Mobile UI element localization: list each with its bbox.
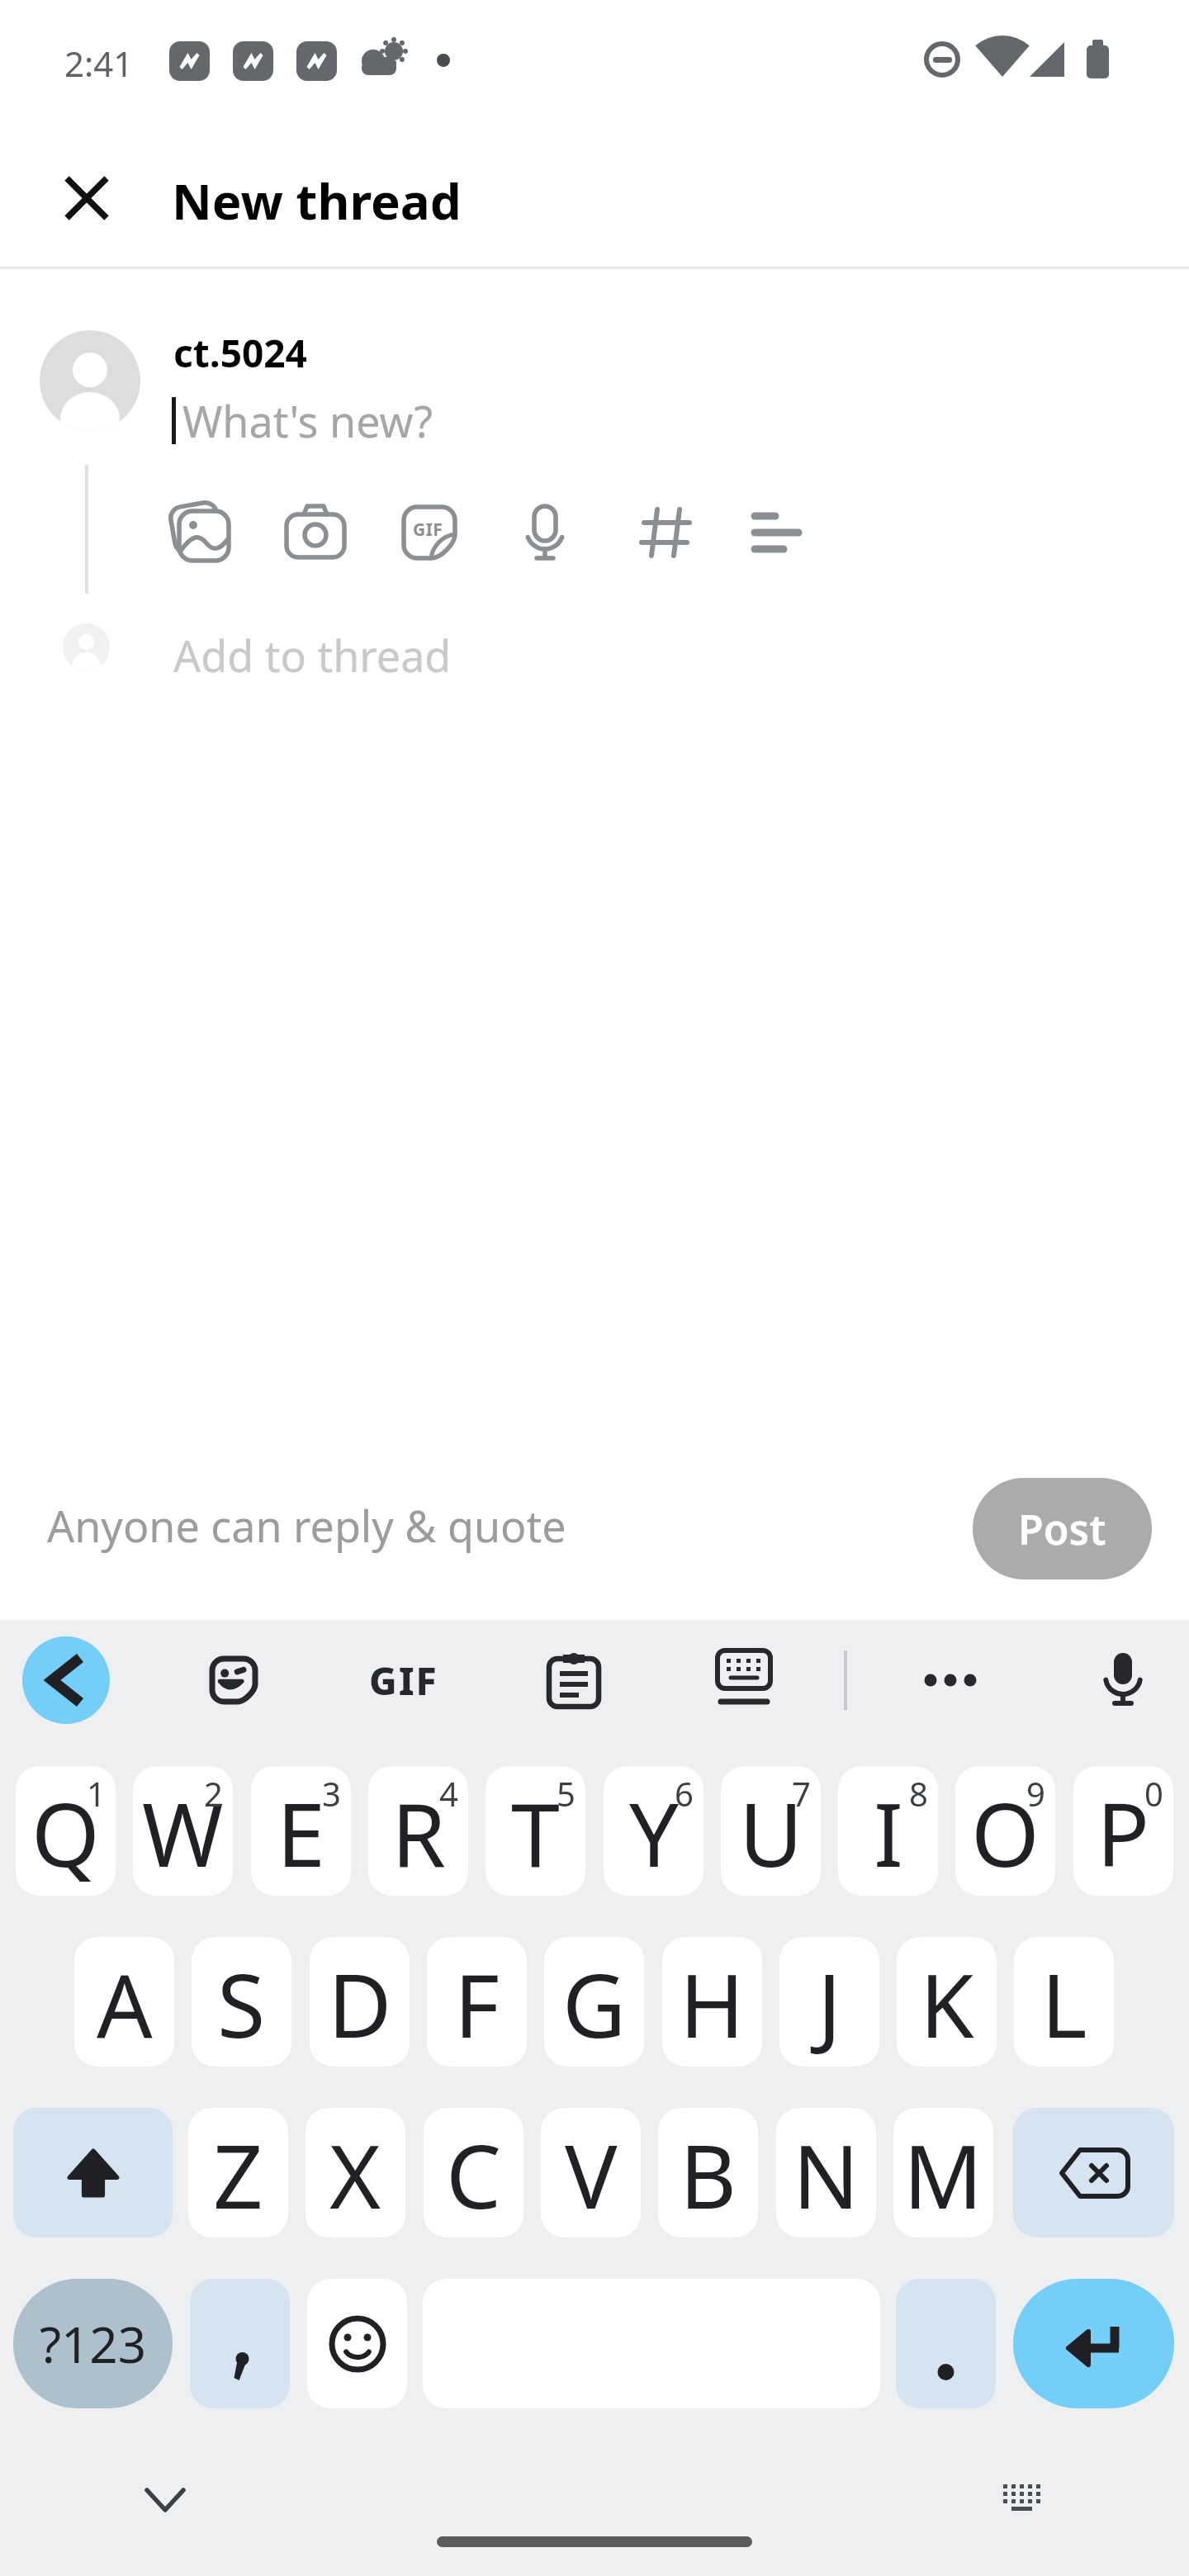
staticText: L (1041, 1944, 1087, 2063)
button[interactable]: V (541, 2108, 641, 2237)
button[interactable]: Add to thread (40, 614, 502, 684)
button[interactable]: C (424, 2108, 523, 2237)
staticText: Anyone can reply & quote (47, 1496, 566, 1555)
staticText: 5 (557, 1771, 576, 1816)
staticText: Z (213, 2115, 263, 2234)
staticText: P (1097, 1773, 1150, 1892)
staticText: R (391, 1773, 446, 1892)
button[interactable] (989, 2474, 1059, 2526)
button[interactable]: P (1073, 1766, 1173, 1896)
staticText: E (277, 1773, 325, 1892)
button[interactable] (49, 160, 125, 236)
staticText: Add to thread (173, 626, 452, 684)
button[interactable]: J (779, 1937, 879, 2067)
button[interactable] (13, 2108, 173, 2237)
button[interactable] (190, 2279, 290, 2408)
button[interactable] (1013, 2279, 1174, 2408)
button[interactable]: GIF (361, 1649, 447, 1712)
staticText: 2 (204, 1771, 223, 1816)
staticText: GIF (413, 518, 443, 542)
button[interactable] (1013, 2108, 1174, 2237)
staticText: 2:41 (64, 40, 134, 87)
button[interactable] (130, 2474, 200, 2526)
staticText: J (817, 1944, 841, 2063)
button[interactable]: ?123 (13, 2279, 173, 2408)
button[interactable]: I (838, 1766, 938, 1896)
staticText: O (971, 1773, 1040, 1892)
staticText: F (454, 1944, 500, 2063)
staticText: 8 (909, 1771, 928, 1816)
staticText: A (97, 1944, 153, 2063)
staticText: GIF (369, 1655, 438, 1707)
button[interactable]: E (251, 1766, 351, 1896)
button[interactable] (307, 2279, 407, 2408)
staticText: T (511, 1773, 560, 1892)
button[interactable]: S (192, 1937, 291, 2067)
staticText: U (739, 1773, 803, 1892)
button[interactable]: O (955, 1766, 1055, 1896)
button[interactable] (626, 493, 705, 572)
staticText: Q (31, 1773, 100, 1892)
staticText: 3 (322, 1771, 341, 1816)
button[interactable]: D (310, 1937, 410, 2067)
button[interactable]: X (306, 2108, 405, 2237)
staticText: W (142, 1773, 224, 1892)
staticText: G (562, 1944, 627, 2063)
button[interactable]: Z (188, 2108, 288, 2237)
staticText: K (920, 1944, 974, 2063)
staticText: Post (1018, 1501, 1106, 1557)
staticText: I (874, 1773, 903, 1892)
button[interactable]: B (658, 2108, 758, 2237)
staticText: X (329, 2115, 381, 2234)
button[interactable] (896, 2279, 996, 2408)
staticText: Y (629, 1773, 679, 1892)
button[interactable]: GIF (390, 493, 469, 572)
button[interactable] (912, 1650, 988, 1710)
button[interactable]: R (368, 1766, 468, 1896)
button[interactable]: H (662, 1937, 762, 2067)
staticText: 9 (1026, 1771, 1045, 1816)
staticText: What's new? (182, 391, 433, 450)
staticText: V (565, 2115, 618, 2234)
button[interactable]: L (1014, 1937, 1114, 2067)
button[interactable]: Anyone can reply & quote (47, 1496, 675, 1562)
button[interactable] (276, 493, 355, 572)
button[interactable] (161, 493, 240, 572)
button[interactable] (505, 493, 585, 572)
button[interactable]: Y (604, 1766, 703, 1896)
button[interactable]: K (897, 1937, 997, 2067)
button[interactable]: G (544, 1937, 644, 2067)
button[interactable] (708, 1646, 779, 1709)
button[interactable]: W (133, 1766, 233, 1896)
staticText: ?123 (40, 2310, 146, 2378)
staticText: 4 (439, 1771, 458, 1816)
button[interactable]: F (427, 1937, 527, 2067)
button[interactable] (202, 1649, 265, 1712)
staticText: N (793, 2115, 860, 2234)
staticText: D (328, 1944, 392, 2063)
button[interactable]: Q (16, 1766, 116, 1896)
staticText: 6 (675, 1771, 694, 1816)
staticText: C (446, 2115, 501, 2234)
staticText: B (680, 2115, 737, 2234)
button[interactable]: N (776, 2108, 876, 2237)
staticText: S (217, 1944, 266, 2063)
button[interactable] (540, 1646, 608, 1714)
button[interactable]: Post (973, 1478, 1152, 1579)
staticText: ct.5024 (173, 327, 307, 379)
staticText: New thread (172, 167, 462, 234)
button[interactable] (22, 1636, 110, 1724)
button[interactable]: A (74, 1937, 174, 2067)
staticText: 0 (1144, 1771, 1163, 1816)
button[interactable]: T (486, 1766, 585, 1896)
button[interactable]: M (893, 2108, 993, 2237)
button[interactable] (1090, 1643, 1156, 1717)
button[interactable]: U (721, 1766, 821, 1896)
staticText: 1 (87, 1771, 106, 1816)
staticText: H (680, 1944, 745, 2063)
staticText: M (903, 2115, 983, 2234)
staticText: 7 (792, 1771, 811, 1816)
button[interactable] (737, 493, 816, 572)
